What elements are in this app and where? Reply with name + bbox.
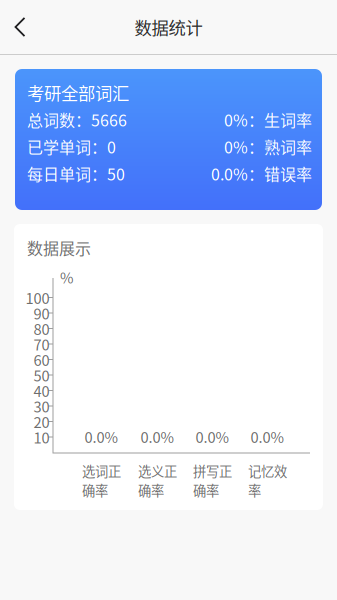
staticText: 20 — [33, 411, 49, 432]
staticText: 0.0% — [84, 426, 118, 447]
staticText: 40 — [33, 380, 49, 401]
staticText: 0.0% — [250, 426, 284, 447]
staticText: 记忆效 率 — [248, 461, 287, 500]
staticText: 选词正 确率 — [82, 461, 121, 500]
staticText: 100 — [25, 287, 49, 308]
staticText: 考研全部词汇 — [27, 80, 129, 105]
staticText: 70 — [33, 333, 49, 355]
button[interactable]: Back — [0, 5, 40, 49]
staticText: 80 — [33, 318, 49, 339]
staticText: 60 — [33, 349, 49, 370]
staticText: 10 — [33, 426, 49, 448]
staticText: 数据展示 — [27, 236, 91, 259]
staticText: 0.0% — [195, 426, 229, 447]
staticText: 拼写正 确率 — [193, 461, 232, 500]
staticText: 数据统计 — [134, 14, 202, 40]
staticText: 0%：生词率 — [224, 108, 312, 131]
staticText: 50 — [33, 364, 49, 386]
staticText: % — [60, 266, 74, 288]
staticText: 已学单词：0 — [27, 135, 116, 158]
staticText: 0%：熟词率 — [224, 135, 312, 158]
staticText: 90 — [33, 302, 49, 324]
staticText: 30 — [33, 395, 49, 417]
staticText: 每日单词：50 — [27, 162, 125, 185]
staticText: 0.0% — [140, 426, 174, 447]
staticText: 0.0%：错误率 — [211, 162, 312, 185]
staticText: 选义正 确率 — [138, 461, 177, 500]
staticText: 总词数：5666 — [27, 108, 127, 131]
